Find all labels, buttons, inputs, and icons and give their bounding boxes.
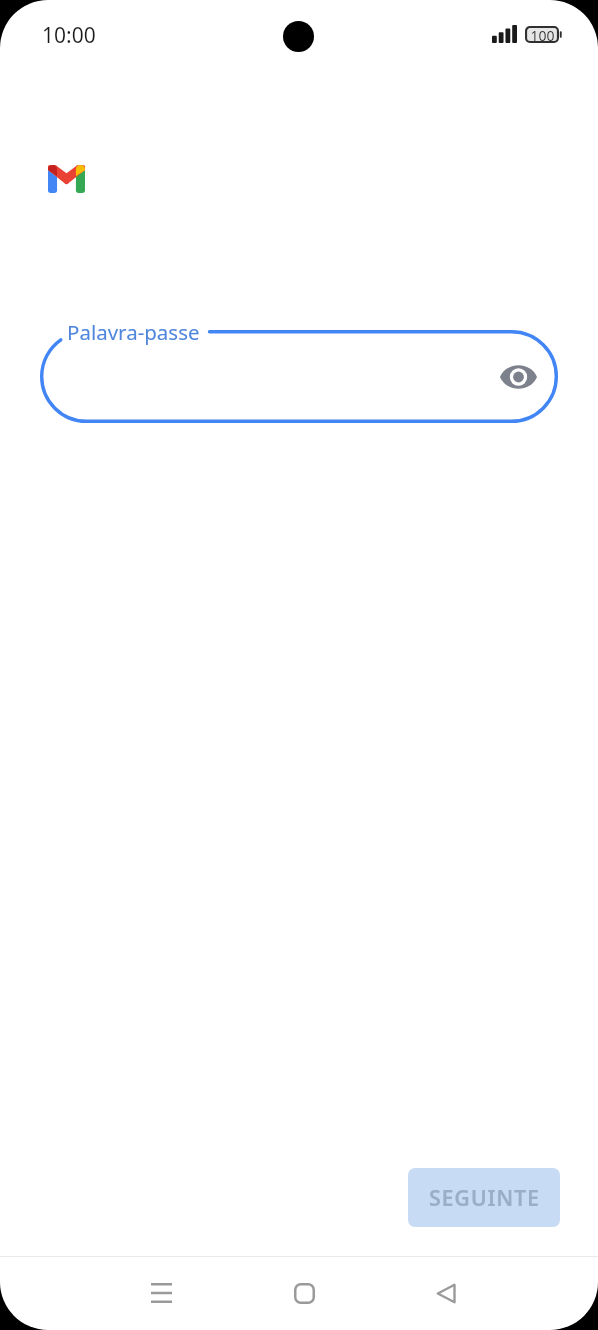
button[interactable]: Palavra-passe (40, 330, 558, 423)
staticText: 10:00 (42, 21, 96, 50)
staticText: SEGUINTE (429, 1183, 540, 1212)
button[interactable]: Mostrar palavra-passe (494, 352, 543, 401)
staticText: Palavra-passe (67, 318, 200, 346)
button[interactable]: Voltar (412, 1259, 480, 1327)
staticText: 100 (530, 26, 555, 43)
button[interactable]: Recentes (127, 1259, 195, 1327)
button[interactable]: SEGUINTE (408, 1168, 560, 1227)
button[interactable]: Início (270, 1259, 338, 1327)
